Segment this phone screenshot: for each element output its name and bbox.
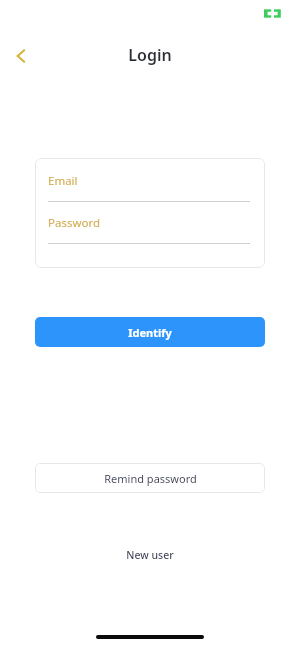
button[interactable]: Identify: [35, 317, 265, 347]
staticText: Remind password: [104, 471, 197, 486]
button[interactable]: Remind password: [35, 463, 265, 493]
staticText: Login: [128, 44, 172, 66]
staticText: Password: [48, 215, 101, 231]
staticText: Email: [48, 173, 78, 189]
staticText: New user: [126, 548, 174, 562]
button[interactable]: Back: [6, 40, 38, 72]
button[interactable]: New user: [116, 544, 184, 566]
staticText: Identify: [128, 325, 172, 340]
